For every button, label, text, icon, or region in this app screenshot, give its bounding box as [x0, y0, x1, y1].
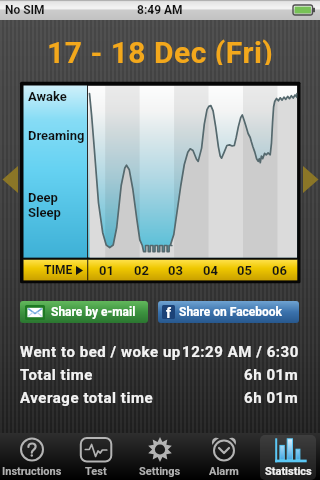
staticText: Instructions [2, 465, 62, 478]
staticText: Share on Facebook [179, 305, 283, 319]
staticText: 04 [203, 263, 218, 277]
staticText: 17 - 18 Dec (Fri) [47, 35, 274, 65]
button[interactable]: Next night [298, 162, 320, 198]
staticText: Test [85, 465, 107, 478]
staticText: f [166, 305, 172, 319]
staticText: 06 [272, 263, 287, 277]
staticText: 02 [134, 263, 149, 277]
staticText: TIME [44, 263, 73, 277]
staticText: Share by e-mail [51, 305, 136, 319]
staticText: Settings [139, 465, 181, 478]
button[interactable]: Settings [128, 433, 192, 480]
staticText: Total time [20, 366, 93, 384]
button[interactable]: Previous night [0, 162, 22, 198]
staticText: Dreaming [28, 128, 85, 143]
staticText: 05 [237, 263, 252, 277]
button[interactable]: Instructions [0, 433, 64, 480]
staticText: Statistics [265, 465, 312, 478]
staticText: Sleep [28, 205, 61, 220]
staticText: 6h 01m [244, 389, 299, 407]
button[interactable]: Statistics [256, 433, 320, 480]
staticText: 8:49 AM [137, 3, 183, 17]
staticText: 12:29 AM / 6:30 [182, 343, 299, 361]
staticText: 01 [99, 263, 114, 277]
staticText: 6h 01m [244, 366, 299, 384]
staticText: Deep [28, 190, 58, 205]
staticText: Average total time [20, 389, 154, 407]
staticText: Alarm [209, 465, 239, 478]
staticText: Went to bed / woke up [20, 343, 181, 361]
staticText: 03 [168, 263, 183, 277]
staticText: Awake [28, 89, 67, 104]
button[interactable]: Test [64, 433, 128, 480]
staticText: No SIM [5, 3, 45, 17]
button[interactable]: f [158, 301, 299, 323]
button[interactable]: Share by e-mail [20, 301, 148, 323]
button[interactable]: Alarm [192, 433, 256, 480]
